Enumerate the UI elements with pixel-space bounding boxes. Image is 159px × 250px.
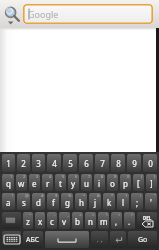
button[interactable]: @: [17, 193, 30, 210]
staticText: k: [107, 197, 112, 208]
button[interactable]: 1: [2, 174, 14, 191]
button[interactable]: -: [47, 212, 57, 229]
staticText: +: [79, 212, 82, 217]
button[interactable]: 5: [63, 154, 77, 172]
staticText: {: [141, 174, 143, 179]
button[interactable]: Search provider: [0, 0, 23, 28]
staticText: }: [154, 174, 156, 179]
button[interactable]: New line: [110, 231, 126, 248]
staticText: 2: [23, 174, 26, 179]
staticText: 6: [84, 158, 89, 169]
button[interactable]: *: [103, 193, 115, 210]
staticText: 5: [68, 158, 73, 169]
button[interactable]: ^: [75, 193, 87, 210]
button[interactable]: {: [133, 174, 144, 191]
button[interactable]: Shift: [2, 212, 21, 229]
staticText: ,: [115, 216, 118, 227]
button[interactable]: 8: [111, 154, 125, 172]
staticText: 1: [10, 174, 13, 179]
staticText: ,: [101, 236, 103, 244]
button[interactable]: .: [91, 231, 108, 248]
button[interactable]: 0: [143, 154, 157, 172]
staticText: .: [128, 216, 131, 227]
button[interactable]: ": [145, 193, 157, 210]
button[interactable]: +: [72, 212, 83, 229]
button[interactable]: =: [85, 212, 96, 229]
staticText: v: [62, 216, 67, 227]
button[interactable]: 6: [68, 174, 79, 191]
staticText: 3: [36, 174, 39, 179]
button[interactable]: 3: [32, 154, 45, 172]
button[interactable]: 4: [47, 154, 61, 172]
button[interactable]: 3: [29, 174, 40, 191]
staticText: [: [137, 178, 140, 189]
button[interactable]: 9: [107, 174, 118, 191]
button[interactable]: (: [117, 193, 129, 210]
staticText: 6: [75, 174, 78, 179]
staticText: `: [42, 212, 44, 217]
button[interactable]: Go: [128, 231, 157, 248]
button[interactable]: &: [89, 193, 101, 210]
button[interactable]: %: [61, 193, 73, 210]
staticText: ': [150, 197, 152, 208]
staticText: f: [52, 197, 55, 208]
button[interactable]: 5: [55, 174, 66, 191]
button[interactable]: !: [2, 193, 15, 210]
button[interactable]: \: [98, 212, 109, 229]
staticText: u: [84, 178, 89, 189]
staticText: \: [106, 212, 108, 217]
staticText: q: [6, 178, 11, 189]
staticText: 8: [101, 174, 104, 179]
staticText: 3: [36, 158, 41, 169]
staticText: %: [68, 193, 72, 198]
button[interactable]: 4: [42, 174, 53, 191]
staticText: e: [32, 178, 37, 189]
staticText: ]: [150, 178, 153, 189]
staticText: &: [97, 193, 100, 198]
button[interactable]: Space: [45, 231, 89, 248]
button[interactable]: 0: [120, 174, 131, 191]
staticText: 9: [132, 158, 137, 169]
button[interactable]: ~: [23, 212, 33, 229]
button[interactable]: 1: [2, 154, 15, 172]
staticText: j: [94, 197, 97, 208]
staticText: z: [26, 216, 30, 227]
button[interactable]: Change keyboard: [2, 231, 21, 248]
button[interactable]: 7: [95, 154, 109, 172]
staticText: p: [123, 178, 128, 189]
button[interactable]: :: [131, 193, 143, 210]
button[interactable]: 6: [79, 154, 93, 172]
staticText: ^: [83, 193, 86, 198]
staticText: i: [98, 178, 101, 189]
staticText: t: [59, 178, 62, 189]
staticText: 1: [6, 158, 11, 169]
button[interactable]: >: [124, 212, 135, 229]
staticText: 9: [114, 174, 117, 179]
button[interactable]: }: [146, 174, 157, 191]
button[interactable]: АБС: [23, 231, 43, 248]
button[interactable]: $: [47, 193, 59, 210]
button[interactable]: `: [35, 212, 45, 229]
button[interactable]: Google: [23, 4, 153, 24]
button[interactable]: #: [32, 193, 45, 210]
staticText: d: [36, 197, 41, 208]
staticText: 7: [100, 158, 105, 169]
staticText: 8: [116, 158, 121, 169]
button[interactable]: 2: [16, 174, 27, 191]
staticText: .: [97, 236, 99, 244]
staticText: (: [126, 193, 128, 198]
staticText: #: [41, 193, 44, 198]
button[interactable]: 7: [81, 174, 92, 191]
button[interactable]: <: [111, 212, 122, 229]
button[interactable]: _: [59, 212, 70, 229]
button[interactable]: DEL: [137, 212, 157, 229]
button[interactable]: 8: [94, 174, 105, 191]
staticText: 5: [62, 174, 65, 179]
staticText: :: [140, 193, 142, 198]
staticText: АБС: [26, 235, 40, 245]
button[interactable]: 2: [17, 154, 30, 172]
staticText: s: [22, 197, 26, 208]
staticText: 4: [52, 158, 57, 169]
staticText: _: [67, 212, 69, 217]
button[interactable]: 9: [127, 154, 141, 172]
